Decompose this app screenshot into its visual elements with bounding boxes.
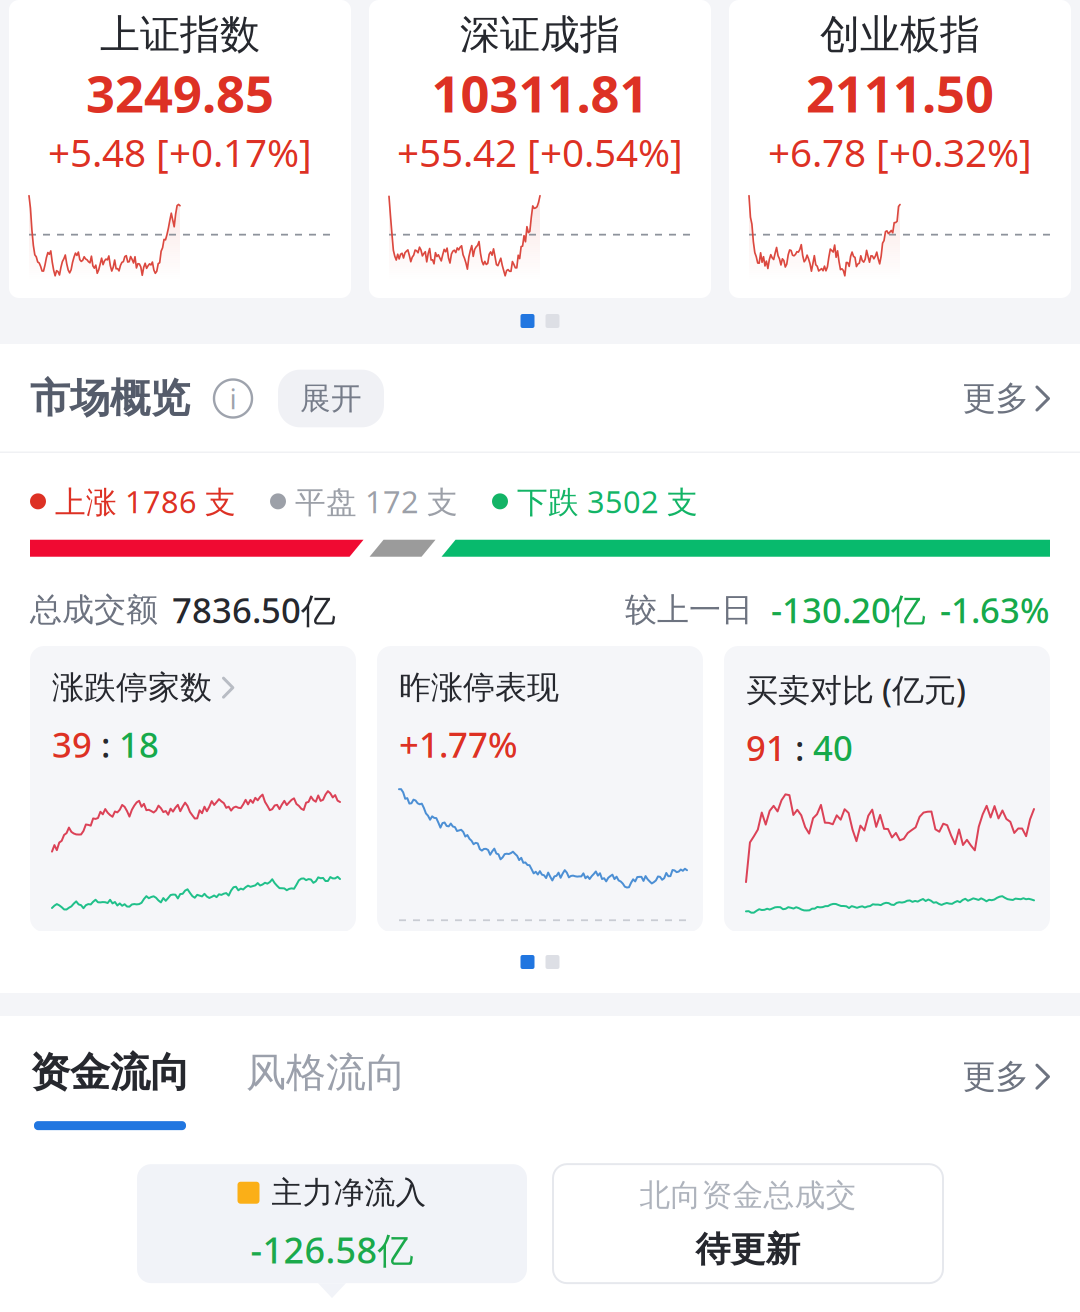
- staticText: +1.77%: [399, 721, 518, 767]
- button[interactable]: Page 2: [545, 314, 559, 328]
- staticText: 创业板指: [820, 10, 980, 59]
- staticText: 下跌 3502 支: [517, 481, 698, 522]
- button[interactable]: 创业板指: [729, 0, 1071, 298]
- button[interactable]: 更多: [962, 378, 1050, 419]
- staticText: 总成交额: [30, 590, 158, 629]
- staticText: 市场概览: [30, 374, 190, 423]
- button[interactable]: 昨涨停表现: [377, 646, 703, 932]
- staticText: 风格流向: [246, 1048, 406, 1097]
- button[interactable]: 主力净流入: [137, 1164, 527, 1298]
- staticText: 18: [119, 721, 159, 767]
- button[interactable]: 关于市场概览: [214, 379, 252, 417]
- button[interactable]: 上证指数: [9, 0, 351, 298]
- staticText: 更多: [962, 378, 1028, 419]
- staticText: 2111.50: [806, 59, 994, 126]
- staticText: 较上一日: [625, 590, 753, 629]
- button[interactable]: Page 2: [545, 955, 559, 969]
- staticText: 上证指数: [100, 10, 260, 59]
- staticText: -1.63%: [940, 587, 1050, 633]
- staticText: 40: [813, 724, 853, 770]
- staticText: +6.78 [+0.32%]: [768, 126, 1032, 178]
- staticText: 3249.85: [86, 59, 274, 126]
- staticText: 昨涨停表现: [399, 668, 559, 707]
- staticText: +55.42 [+0.54%]: [397, 126, 683, 178]
- staticText: -130.20亿: [771, 587, 926, 633]
- staticText: 更多: [962, 1056, 1028, 1097]
- staticText: 91: [746, 724, 786, 770]
- staticText: 10311.81: [431, 59, 648, 126]
- button[interactable]: 展开: [278, 370, 384, 427]
- staticText: 待更新: [695, 1228, 800, 1271]
- staticText: 资金流向: [30, 1048, 190, 1097]
- staticText: 深证成指: [460, 10, 620, 59]
- staticText: :: [786, 724, 813, 770]
- staticText: -126.58亿: [250, 1226, 413, 1273]
- button[interactable]: 资金流向: [30, 1048, 190, 1097]
- staticText: 买卖对比 (亿元): [746, 668, 966, 710]
- staticText: 涨跌停家数: [52, 668, 212, 707]
- button[interactable]: 涨跌停家数: [30, 646, 356, 932]
- staticText: 展开: [300, 380, 362, 417]
- staticText: i: [229, 380, 236, 417]
- staticText: +5.48 [+0.17%]: [48, 126, 312, 178]
- button[interactable]: 买卖对比 (亿元): [724, 646, 1050, 932]
- staticText: 平盘 172 支: [295, 481, 458, 522]
- staticText: 7836.50亿: [172, 587, 336, 633]
- staticText: :: [92, 721, 119, 767]
- button[interactable]: Page 1: [520, 314, 534, 328]
- button[interactable]: 深证成指: [369, 0, 711, 298]
- button[interactable]: 风格流向: [246, 1048, 406, 1097]
- staticText: 主力净流入: [271, 1174, 426, 1212]
- staticText: 39: [52, 721, 92, 767]
- button[interactable]: 更多: [962, 1056, 1050, 1097]
- staticText: 北向资金总成交: [639, 1176, 856, 1214]
- staticText: 上涨 1786 支: [55, 481, 236, 522]
- button[interactable]: Page 1: [520, 955, 534, 969]
- button[interactable]: 北向资金总成交: [553, 1164, 943, 1283]
